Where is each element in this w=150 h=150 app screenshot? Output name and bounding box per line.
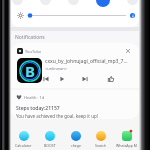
button[interactable]: Quick setting (12, 0, 23, 5)
button[interactable]: Next (79, 73, 90, 84)
button[interactable]: BOOST (37, 130, 62, 148)
button[interactable]: Like (105, 73, 116, 84)
staticText: B (25, 61, 35, 81)
button[interactable]: Play (56, 73, 67, 84)
button[interactable]: Auto brightness (130, 13, 135, 18)
staticText: <unknown> (45, 66, 68, 71)
staticText: YouTube (25, 49, 42, 54)
staticText: Health · 1d (24, 95, 45, 100)
button[interactable]: Previous (40, 73, 51, 84)
button[interactable]: chege (63, 130, 88, 148)
button[interactable]: Calculator (11, 130, 36, 148)
button[interactable]: Quick setting (68, 0, 79, 5)
button[interactable]: Search (88, 130, 113, 148)
button[interactable]: Health · 1d (11, 90, 139, 119)
button[interactable]: Brightness (17, 12, 24, 19)
button[interactable]: Quick setting (127, 0, 138, 5)
button[interactable]: Dismiss (124, 47, 132, 55)
staticText: Steps today:21157 (16, 105, 60, 112)
button[interactable]: WhatsApp M. (114, 130, 139, 148)
staticText: WhatsApp M. (116, 143, 138, 148)
button[interactable]: YouTube (11, 43, 139, 88)
staticText: Notifications (15, 34, 45, 41)
staticText: BOOST (44, 143, 56, 148)
staticText: chege (71, 143, 81, 148)
staticText: Search (95, 143, 107, 148)
button[interactable]: Quick setting (40, 0, 51, 5)
button[interactable]: Quick setting on (96, 0, 110, 7)
staticText: You have achieved the goal, keep it up! (16, 113, 98, 119)
staticText: Calculator (15, 143, 32, 148)
staticText: cxxu_by_johnujagi_official_mp3_7... (45, 58, 128, 65)
